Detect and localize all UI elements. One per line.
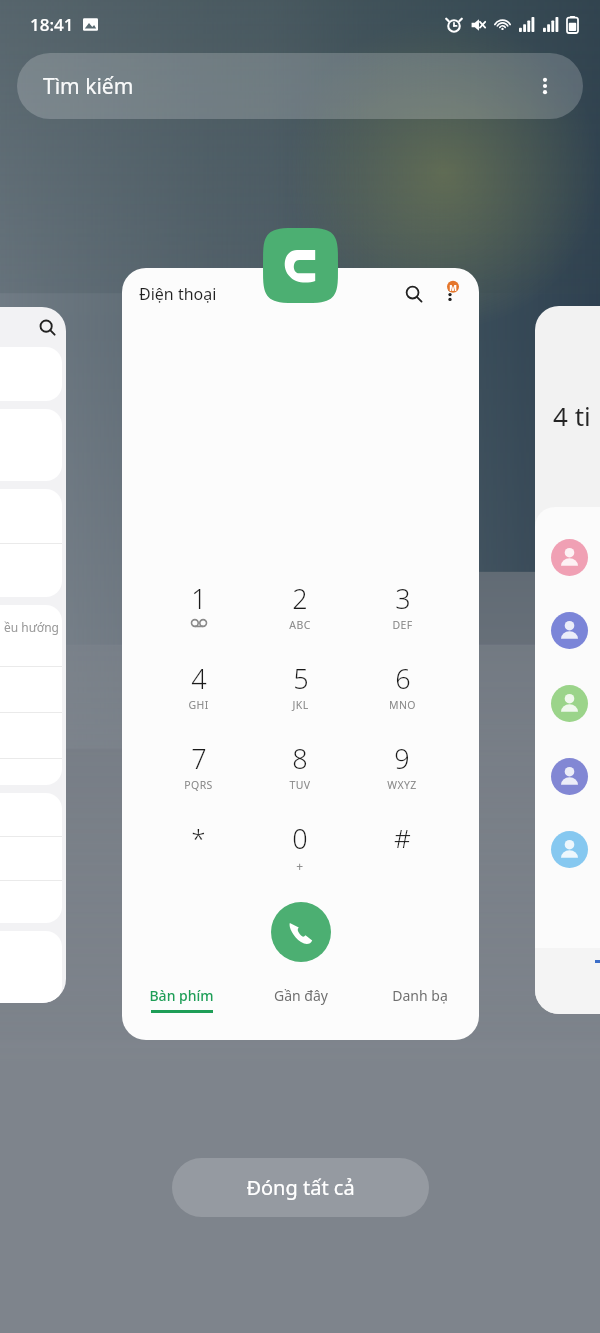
staticText: Danh bạ — [392, 986, 448, 1005]
button[interactable]: 6 — [351, 660, 453, 718]
button[interactable]: * — [148, 820, 249, 878]
button[interactable]: 8 — [249, 740, 351, 798]
staticText: JKL — [292, 698, 309, 712]
button[interactable] — [535, 813, 600, 886]
button[interactable]: Call — [271, 902, 331, 962]
button[interactable]: 7 — [148, 740, 249, 798]
button[interactable]: Search — [399, 279, 429, 309]
staticText: 6 — [395, 660, 411, 697]
staticText: 1 — [191, 580, 207, 617]
button[interactable] — [535, 740, 600, 813]
button[interactable]: 3 — [351, 580, 453, 638]
button[interactable]: More options — [435, 279, 465, 309]
staticText: DEF — [392, 618, 413, 632]
button[interactable] — [535, 521, 600, 594]
button[interactable]: Bàn phím — [122, 986, 241, 1030]
button[interactable]: Danh bạ — [360, 986, 479, 1030]
button[interactable]: Điện thoại — [122, 268, 479, 1040]
staticText: 4 — [191, 660, 207, 697]
button[interactable]: # — [351, 820, 453, 878]
staticText: # — [394, 820, 411, 855]
button[interactable]: More options — [523, 64, 567, 108]
staticText: MNO — [389, 698, 416, 712]
button[interactable]: 9 — [351, 740, 453, 798]
staticText: Điện thoại — [139, 283, 217, 305]
staticText: ều hướng — [4, 619, 59, 635]
staticText: 7 — [191, 740, 207, 777]
button[interactable]: Đóng tất cả — [172, 1158, 429, 1217]
staticText: 18:41 — [30, 13, 74, 36]
button[interactable] — [535, 594, 600, 667]
button[interactable]: Gần đây — [241, 986, 360, 1030]
staticText: Gần đây — [274, 986, 328, 1005]
button[interactable]: 4 ti — [535, 306, 600, 1014]
staticText: Bàn phím — [149, 986, 214, 1005]
button[interactable]: 0 — [249, 820, 351, 878]
staticText: 9 — [394, 740, 410, 777]
staticText: 2 — [292, 580, 308, 617]
button[interactable]: 1 — [148, 580, 249, 638]
button[interactable] — [535, 667, 600, 740]
staticText: PQRS — [184, 778, 213, 792]
button[interactable]: 4 — [148, 660, 249, 718]
staticText: M — [449, 282, 457, 293]
staticText: * — [191, 820, 206, 855]
staticText: 4 ti — [553, 398, 600, 433]
staticText: GHI — [188, 698, 209, 712]
button[interactable]: 2 — [249, 580, 351, 638]
button[interactable]: 5 — [249, 660, 351, 718]
staticText: 5 — [293, 660, 309, 697]
button[interactable]: Tìm kiếm — [17, 53, 583, 119]
staticText: 8 — [292, 740, 308, 777]
staticText: Đóng tất cả — [246, 1174, 355, 1201]
staticText: TUV — [289, 778, 311, 792]
button[interactable]: ều hướng — [0, 307, 66, 1003]
staticText: WXYZ — [387, 778, 417, 792]
staticText: Tìm kiếm — [43, 72, 134, 101]
staticText: + — [296, 858, 304, 874]
staticText: ABC — [289, 618, 311, 632]
staticText: 3 — [395, 580, 411, 617]
staticText: 0 — [292, 820, 308, 857]
